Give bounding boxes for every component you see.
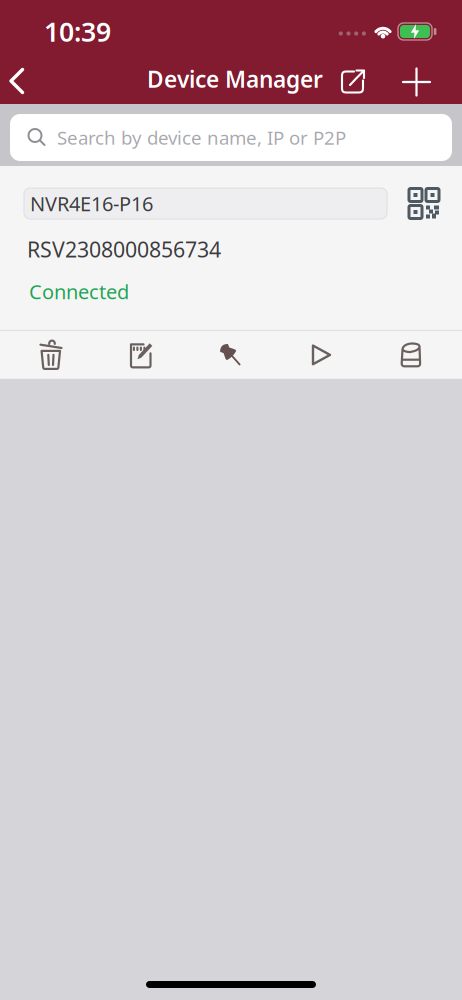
staticText: Connected: [29, 278, 129, 305]
button[interactable]: Show QR Code: [409, 188, 439, 218]
button[interactable]: Edit: [96, 331, 186, 379]
button[interactable]: Add Device: [403, 54, 462, 104]
button[interactable]: Delete: [6, 331, 96, 379]
button[interactable]: Search: [0, 104, 462, 166]
button[interactable]: Storage: [366, 331, 456, 379]
staticText: NVR4E16-P16: [30, 190, 153, 217]
staticText: Search by device name, IP or P2P: [57, 125, 346, 150]
button[interactable]: Export: [341, 54, 403, 104]
button[interactable]: Play: [276, 331, 366, 379]
staticText: RSV2308000856734: [27, 235, 221, 263]
button[interactable]: Back: [0, 54, 42, 104]
staticText: 10:39: [44, 14, 111, 49]
staticText: Device Manager: [147, 64, 323, 94]
button[interactable]: Pin: [186, 331, 276, 379]
